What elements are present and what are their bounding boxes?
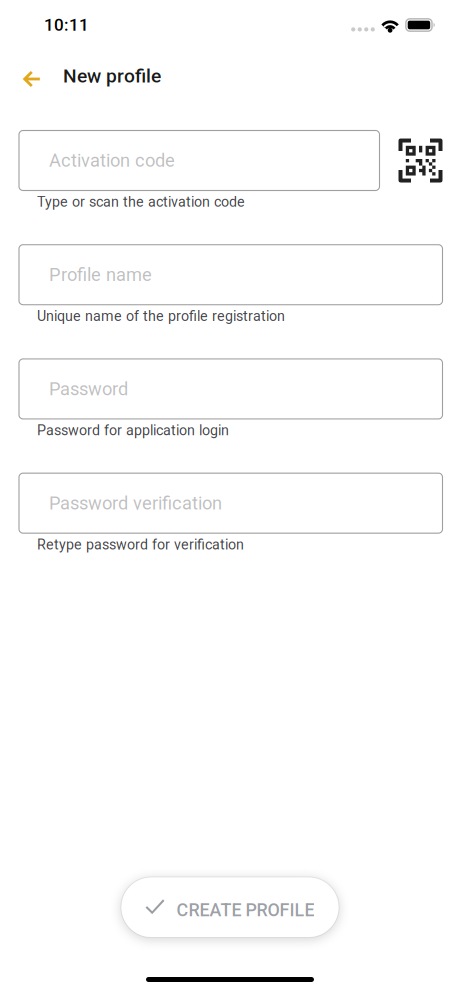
staticText: 10:11: [44, 15, 89, 35]
staticText: Activation code: [49, 150, 175, 171]
staticText: Retype password for verification: [37, 536, 244, 553]
staticText: Password: [49, 378, 128, 400]
staticText: Profile name: [49, 264, 152, 285]
staticText: Type or scan the activation code: [37, 193, 245, 210]
button[interactable]: Back: [8, 52, 54, 100]
staticText: Unique name of the profile registration: [37, 308, 285, 324]
staticText: Password for application login: [37, 422, 229, 439]
button[interactable]: CREATE PROFILE: [121, 877, 339, 937]
staticText: New profile: [63, 65, 161, 87]
staticText: Password verification: [49, 492, 222, 514]
staticText: CREATE PROFILE: [176, 900, 314, 921]
button[interactable]: Scan QR code: [398, 138, 442, 182]
